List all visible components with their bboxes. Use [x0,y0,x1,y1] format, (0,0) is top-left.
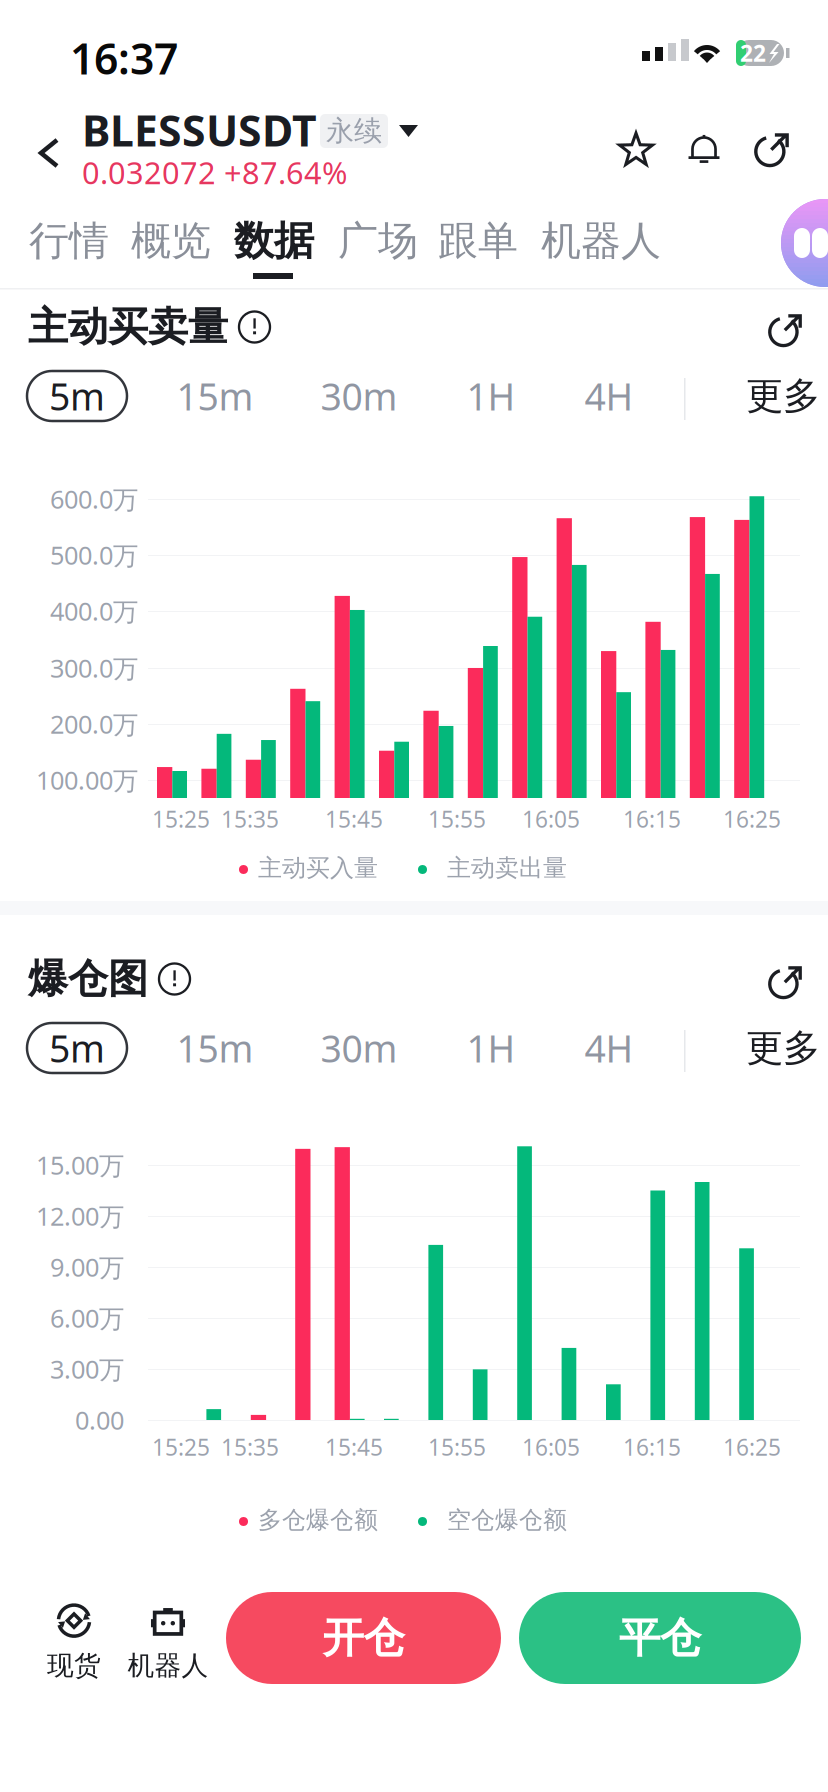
staticText: 15:55 [428,804,486,834]
staticText: 1H [466,371,515,421]
button[interactable]: 更多 [746,1023,828,1073]
button[interactable]: Price alert [670,115,738,183]
staticText: 爆仓图 [28,954,148,1003]
staticText: 9.00万 [50,1250,124,1284]
staticText: 16:15 [623,1432,681,1462]
staticText: 22 [740,38,766,68]
staticText: 30m [320,371,397,421]
staticText: 更多 [746,373,820,419]
button[interactable]: 4H [549,371,669,421]
button[interactable]: Favorite [602,115,670,183]
button[interactable]: 现货 [28,1592,120,1692]
button[interactable]: 行情 [29,213,129,269]
staticText: 16:25 [723,804,781,834]
staticText: 多仓爆仓额 [258,1505,378,1535]
button[interactable]: 30m [299,1023,419,1073]
staticText: 5m [49,1023,105,1073]
staticText: 5m [49,371,105,421]
button[interactable]: Share [738,115,806,183]
staticText: 16:25 [723,1432,781,1462]
button[interactable]: 1H [431,371,551,421]
staticText: 15:25 [152,1432,210,1462]
staticText: 15:55 [428,1432,486,1462]
staticText: 机器人 [127,1649,208,1682]
staticText: 15:35 [221,804,279,834]
staticText: 主动买卖量 [28,302,228,351]
staticText: 16:15 [623,804,681,834]
staticText: 现货 [47,1649,101,1682]
button[interactable]: 5m [27,371,127,421]
staticText: 3.00万 [50,1352,124,1386]
staticText: 机器人 [541,216,661,265]
button[interactable]: 15m [155,371,275,421]
staticText: 行情 [29,216,109,265]
button[interactable]: 30m [299,371,419,421]
staticText: 数据 [234,216,314,265]
button[interactable]: 数据 [234,213,334,269]
staticText: 1H [466,1023,515,1073]
button[interactable]: 跟单 [438,213,538,269]
staticText: 600.0万 [50,482,138,516]
button[interactable]: 更多 [746,371,828,421]
button[interactable]: 5m [27,1023,127,1073]
button[interactable]: 开仓 [226,1592,501,1684]
staticText: 4H [584,1023,633,1073]
button[interactable]: 平仓 [519,1592,801,1684]
staticText: 15:35 [221,1432,279,1462]
button[interactable]: 1H [431,1023,551,1073]
staticText: 16:37 [70,30,178,86]
staticText: 更多 [746,1025,820,1071]
staticText: 15:45 [325,1432,383,1462]
staticText: 跟单 [438,216,518,265]
staticText: 平仓 [619,1613,701,1663]
staticText: 30m [320,1023,397,1073]
button[interactable]: Open full chart [756,300,815,359]
staticText: 15m [176,1023,253,1073]
staticText: 概览 [131,216,211,265]
staticText: 400.0万 [50,594,138,628]
staticText: 500.0万 [50,538,138,572]
button[interactable]: 机器人 [121,1592,215,1692]
button[interactable]: 广场 [338,213,438,269]
button[interactable]: 4H [549,1023,669,1073]
staticText: 15m [176,371,253,421]
staticText: 主动卖出量 [447,853,567,883]
staticText: 开仓 [322,1613,404,1663]
staticText: 200.0万 [50,707,138,741]
staticText: BLESSUSDT [82,102,317,158]
staticText: 主动买入量 [258,853,378,883]
button[interactable]: 概览 [131,213,231,269]
staticText: 0.032072 +87.64% [82,152,347,193]
staticText: 15:45 [325,804,383,834]
staticText: 12.00万 [36,1199,124,1233]
staticText: 300.0万 [50,651,138,685]
button[interactable]: 机器人 [541,213,681,269]
staticText: 16:05 [522,804,580,834]
staticText: 广场 [338,216,418,265]
staticText: 15.00万 [36,1148,124,1182]
staticText: 100.00万 [36,763,138,797]
staticText: 6.00万 [50,1301,124,1335]
button[interactable]: Back [20,120,78,186]
button[interactable]: 15m [155,1023,275,1073]
staticText: 16:05 [522,1432,580,1462]
staticText: 0.00 [75,1403,124,1437]
staticText: 15:25 [152,804,210,834]
staticText: 空仓爆仓额 [447,1505,567,1535]
button[interactable]: Open full chart [756,952,815,1011]
staticText: 4H [584,371,633,421]
staticText: 永续 [326,114,382,148]
